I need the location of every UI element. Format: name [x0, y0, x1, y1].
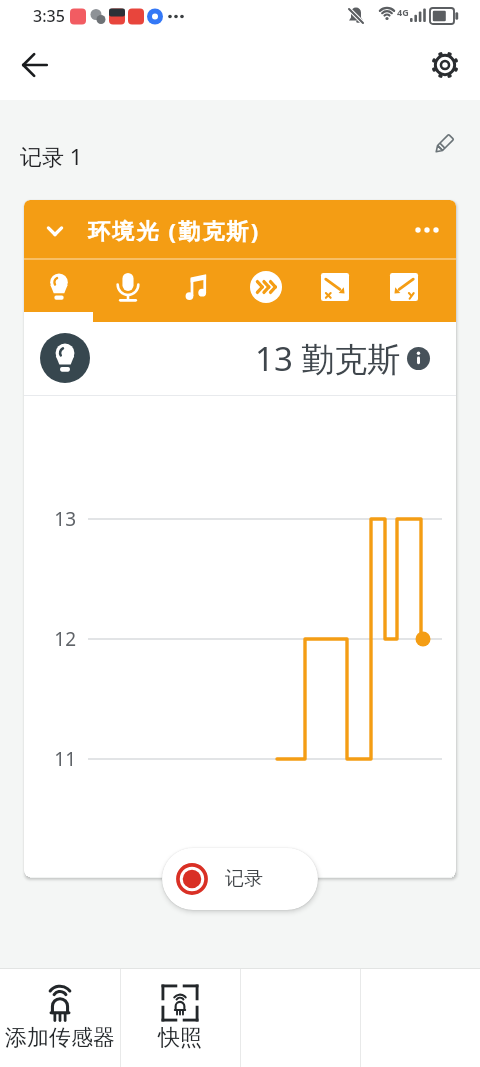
staticText: 记录 [225, 867, 263, 891]
button[interactable] [369, 260, 438, 322]
button[interactable] [24, 260, 93, 322]
button[interactable]: 环境光 (勤克斯) [24, 200, 456, 260]
staticText: 13 勤克斯 [255, 336, 401, 381]
staticText: 快照 [120, 1024, 240, 1052]
button[interactable]: 记录 [162, 848, 318, 910]
button[interactable] [21, 51, 49, 79]
button[interactable] [431, 51, 459, 79]
staticText: 记录 1 [20, 141, 83, 171]
button[interactable] [414, 218, 444, 242]
staticText: 4G [397, 6, 409, 18]
staticText: 12 [36, 626, 76, 652]
button[interactable] [300, 260, 369, 322]
button[interactable] [162, 260, 231, 322]
staticText: 13 [36, 506, 76, 532]
button[interactable] [231, 260, 300, 322]
staticText: 11 [36, 746, 76, 772]
button[interactable]: 快照 [120, 968, 240, 1067]
button[interactable]: 添加传感器 [0, 968, 120, 1067]
button[interactable] [430, 131, 457, 158]
staticText: 添加传感器 [0, 1024, 120, 1052]
staticText: 3:35 [33, 5, 65, 27]
button[interactable] [93, 260, 162, 322]
button[interactable] [407, 347, 430, 370]
staticText: 环境光 (勤克斯) [88, 215, 261, 245]
